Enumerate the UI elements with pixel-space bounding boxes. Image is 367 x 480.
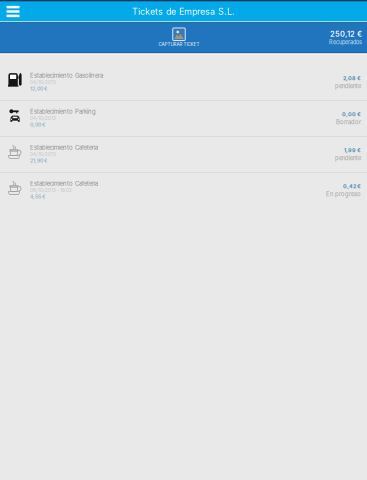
button[interactable]: Establecimiento Parking <box>0 101 367 137</box>
staticText: Establecimiento Cafetería <box>30 144 98 151</box>
button[interactable]: Establecimiento Cafetería <box>0 137 367 173</box>
staticText: En progreso <box>326 191 361 198</box>
button[interactable]: Establecimiento Cafetería <box>0 173 367 209</box>
staticText: 0,42 € <box>343 183 361 190</box>
staticText: Recuperados <box>329 39 362 46</box>
button[interactable]: Establecimiento Gasolinera <box>0 65 367 101</box>
staticText: 21,90 € <box>30 157 48 164</box>
staticText: 04/10/2013 <box>30 152 56 157</box>
staticText: CAPTURAR TICKET <box>158 41 199 47</box>
staticText: 04/10/2013 <box>30 80 56 85</box>
staticText: pendiente <box>335 83 361 90</box>
button[interactable]: Menu <box>0 1 26 22</box>
staticText: Establecimiento Parking <box>30 108 96 115</box>
staticText: Tickets de Empresa S.L. <box>132 6 235 17</box>
staticText: 2,08 € <box>343 75 361 82</box>
staticText: 250,12 € <box>330 29 362 38</box>
staticText: 0,00 € <box>30 121 46 128</box>
staticText: Borrador <box>336 119 361 126</box>
staticText: 4,55 € <box>30 193 46 200</box>
staticText: 12,00 € <box>30 85 48 92</box>
staticText: 0,00 € <box>342 111 361 118</box>
staticText: 04/10/2013 <box>30 116 56 121</box>
staticText: Establecimiento Gasolinera <box>30 72 103 79</box>
staticText: pendiente <box>335 155 361 162</box>
button[interactable]: CAPTURAR TICKET <box>123 23 235 52</box>
staticText: 1,99 € <box>344 147 361 154</box>
staticText: 09/10/2013 - 18:02 <box>30 188 72 193</box>
staticText: Establecimiento Cafetería <box>30 180 98 187</box>
